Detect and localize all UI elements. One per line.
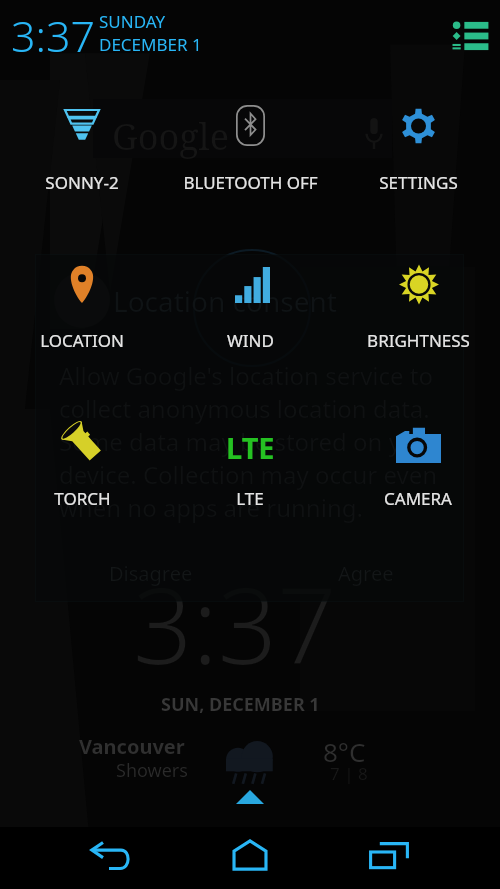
staticText: BLUETOOTH OFF [183,171,318,194]
staticText: Vancouver [79,733,185,760]
staticText: 7 | 8 [330,762,368,785]
staticText: WIND [227,329,274,352]
staticText: 8°C [323,734,366,769]
staticText: LTE [236,487,264,510]
button[interactable]: Camera [335,411,500,511]
button[interactable]: Quick settings [432,5,494,63]
staticText: Location consent [113,282,337,320]
button[interactable]: Location [0,250,165,353]
staticText: CAMERA [384,487,452,510]
staticText: Agree [338,560,394,587]
staticText: SETTINGS [379,171,458,194]
button[interactable]: Brightness [335,248,500,353]
staticText: 3:37 [11,6,96,65]
staticText: Google [112,112,230,161]
button[interactable]: Settings [335,91,500,195]
button[interactable]: Torch [0,405,165,511]
staticText: SUN, DECEMBER 1 [161,692,320,717]
staticText: LOCATION [40,329,124,352]
staticText: Disagree [109,560,193,587]
staticText: LTE [226,428,275,467]
button[interactable]: Recent apps [341,827,437,889]
staticText: 3:37 [133,553,337,695]
button[interactable]: LTE [167,408,333,511]
staticText: TORCH [54,487,111,510]
staticText: Showers [116,758,188,783]
staticText: SUNDAY [99,10,166,33]
staticText: DECEMBER 1 [99,33,202,56]
button[interactable]: Wind [167,251,333,353]
staticText: BRIGHTNESS [367,329,470,352]
button[interactable]: Wi-Fi [0,94,165,195]
button[interactable]: Home [202,827,298,889]
button[interactable]: Back [63,827,159,889]
staticText: SONNY-2 [45,171,119,194]
button[interactable]: Bluetooth off [167,89,333,195]
staticText: Allow Google's location service to colle… [59,359,441,524]
